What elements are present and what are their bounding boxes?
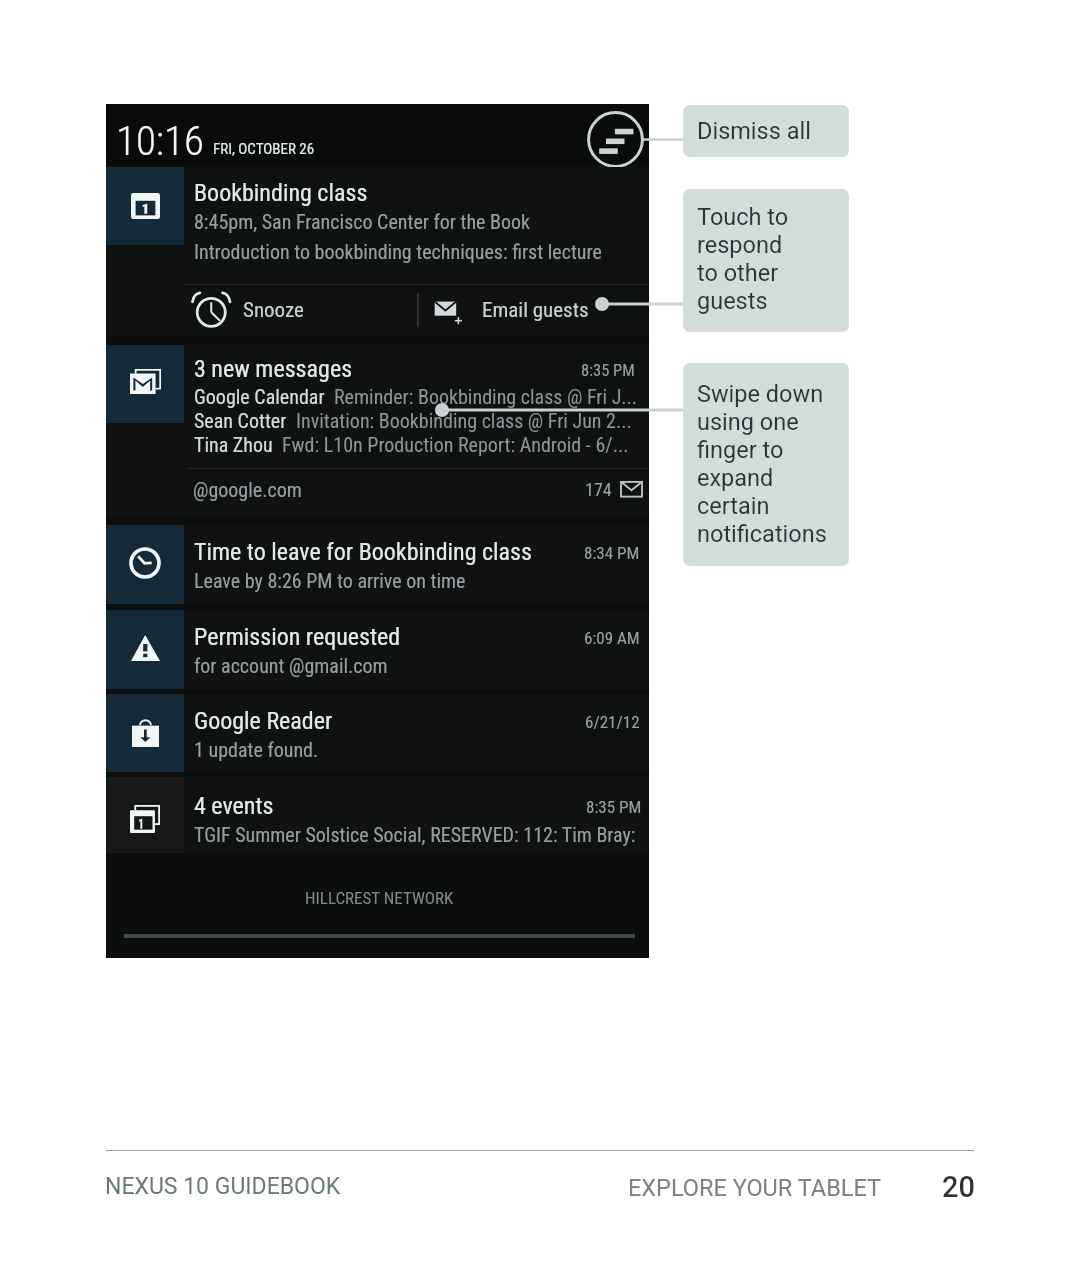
staticText: Google Reader xyxy=(194,707,333,735)
button[interactable]: Touch to xyxy=(683,189,849,332)
staticText: using one xyxy=(697,408,799,436)
staticText: Dismiss all xyxy=(697,117,811,145)
button[interactable]: Snooze xyxy=(192,285,417,335)
staticText: 10:16 xyxy=(116,117,204,165)
staticText: Time to leave for Bookbinding class xyxy=(194,538,533,566)
button[interactable]: 3 new messages xyxy=(106,345,649,517)
staticText: Invitation: Bookbinding class @ Fri Jun … xyxy=(296,409,632,432)
staticText: Snooze xyxy=(243,298,304,323)
button[interactable]: Time to leave for Bookbinding class xyxy=(106,525,649,604)
staticText: notifications xyxy=(697,520,827,548)
staticText: finger to xyxy=(697,436,784,464)
button[interactable]: Swipe down xyxy=(683,363,849,566)
staticText: 8:45pm, San Francisco Center for the Boo… xyxy=(194,210,531,233)
button[interactable]: Google Reader xyxy=(106,694,649,772)
staticText: 6:09 AM xyxy=(584,628,640,648)
button[interactable]: Email guests xyxy=(431,285,649,335)
staticText: Leave by 8:26 PM to arrive on time xyxy=(194,569,466,592)
staticText: Google Calendar xyxy=(194,385,325,408)
staticText: Introduction to bookbinding techniques: … xyxy=(194,240,602,263)
staticText: 8:34 PM xyxy=(584,543,640,563)
staticText: 8:35 PM xyxy=(586,797,642,817)
staticText: Touch to xyxy=(697,203,789,231)
staticText: respond xyxy=(697,231,783,259)
staticText: 6/21/12 xyxy=(585,712,640,732)
staticText: 3 new messages xyxy=(194,355,353,383)
staticText: Permission requested xyxy=(194,623,401,651)
staticText: Fwd: L10n Production Report: Android - 6… xyxy=(282,433,629,456)
staticText: EXPLORE YOUR TABLET xyxy=(628,1174,882,1202)
staticText: NEXUS 10 GUIDEBOOK xyxy=(105,1173,341,1200)
staticText: for account @gmail.com xyxy=(194,654,388,677)
staticText: Swipe down xyxy=(697,380,824,408)
staticText: 1 update found. xyxy=(194,738,319,761)
staticText: Sean Cotter xyxy=(194,409,287,432)
button[interactable]: 4 events xyxy=(106,777,649,853)
staticText: FRI, OCTOBER 26 xyxy=(213,140,315,158)
button[interactable]: Dismiss all xyxy=(683,105,849,157)
staticText: Reminder: Bookbinding class @ Fri J... xyxy=(334,385,638,408)
staticText: certain xyxy=(697,492,770,520)
staticText: to other xyxy=(697,259,779,287)
staticText: 4 events xyxy=(194,792,274,820)
staticText: Email guests xyxy=(482,298,589,323)
button[interactable]: Dismiss all xyxy=(587,111,644,168)
staticText: Bookbinding class xyxy=(194,179,368,207)
staticText: 8:35 PM xyxy=(581,361,635,380)
staticText: Tina Zhou xyxy=(194,433,273,456)
staticText: 20 xyxy=(942,1170,975,1204)
staticText: TGIF Summer Solstice Social, RESERVED: 1… xyxy=(194,823,636,846)
staticText: expand xyxy=(697,464,774,492)
staticText: 174 xyxy=(585,479,612,500)
button[interactable]: Permission requested xyxy=(106,610,649,689)
staticText: @google.com xyxy=(193,478,302,501)
button[interactable]: Bookbinding class xyxy=(106,167,649,335)
staticText: guests xyxy=(697,287,768,315)
staticText: HILLCREST NETWORK xyxy=(305,888,454,908)
